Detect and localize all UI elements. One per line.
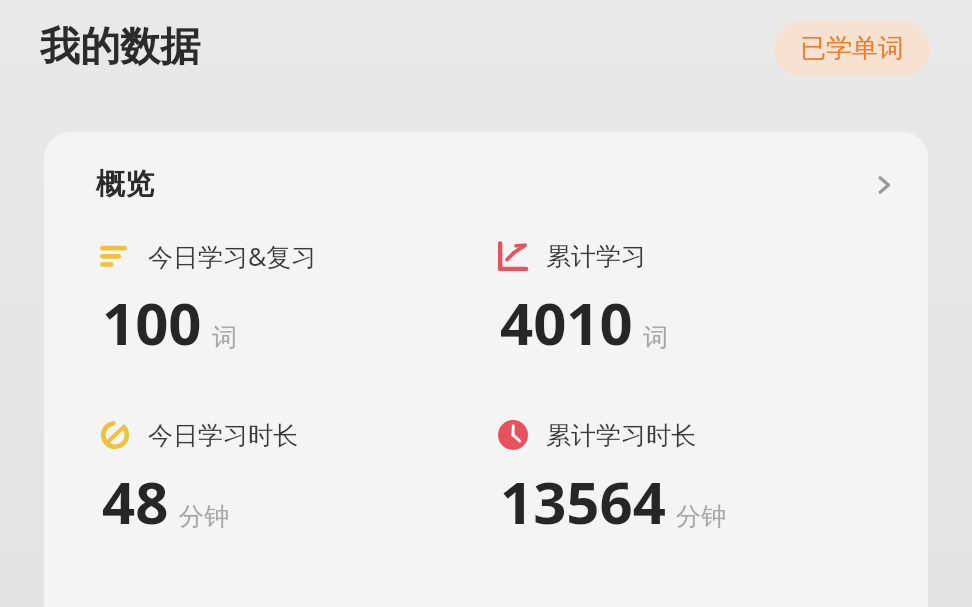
staticText: 4010	[500, 283, 633, 362]
staticText: 累计学习	[546, 241, 646, 272]
button[interactable]: 概览	[44, 132, 928, 217]
staticText: 词	[643, 322, 668, 353]
button[interactable]: 累计学习	[486, 239, 928, 362]
button[interactable]: 今日学习&复习	[44, 239, 486, 362]
staticText: 概览	[96, 166, 154, 203]
button[interactable]: 累计学习时长	[486, 418, 928, 541]
staticText: 48	[102, 462, 169, 541]
staticText: 13564	[500, 462, 666, 541]
staticText: 已学单词	[800, 32, 904, 65]
staticText: 累计学习时长	[546, 420, 696, 451]
staticText: 分钟	[676, 501, 726, 532]
other: Open overview	[870, 171, 898, 199]
staticText: 100	[102, 283, 202, 362]
staticText: 今日学习时长	[148, 420, 298, 451]
staticText: 今日学习&复习	[148, 239, 317, 273]
staticText: 我的数据	[40, 21, 200, 71]
button[interactable]: 已学单词	[774, 21, 930, 76]
button[interactable]: 今日学习时长	[44, 418, 486, 541]
staticText: 词	[212, 322, 237, 353]
staticText: 分钟	[179, 501, 229, 532]
